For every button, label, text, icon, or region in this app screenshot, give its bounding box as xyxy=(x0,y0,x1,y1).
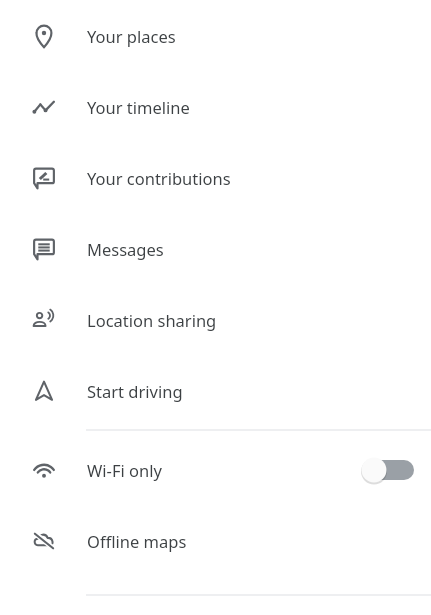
button[interactable]: Offline maps xyxy=(0,505,431,576)
staticText: Your contributions xyxy=(87,167,231,189)
button[interactable]: Your timeline xyxy=(0,71,431,142)
staticText: Your places xyxy=(87,25,176,47)
button[interactable]: Location sharing xyxy=(0,284,431,355)
button[interactable]: Messages xyxy=(0,213,431,284)
staticText: Offline maps xyxy=(87,530,187,552)
button[interactable]: Start driving xyxy=(0,355,431,426)
staticText: Start driving xyxy=(87,380,183,402)
staticText: Your timeline xyxy=(87,96,190,118)
staticText: Wi-Fi only xyxy=(87,459,162,481)
button[interactable]: Wi-Fi only toggle xyxy=(357,434,419,505)
button[interactable]: Wi-Fi only xyxy=(0,434,431,505)
button[interactable]: Your places xyxy=(0,0,431,71)
staticText: Location sharing xyxy=(87,309,217,331)
button[interactable]: Your contributions xyxy=(0,142,431,213)
staticText: Messages xyxy=(87,238,164,260)
